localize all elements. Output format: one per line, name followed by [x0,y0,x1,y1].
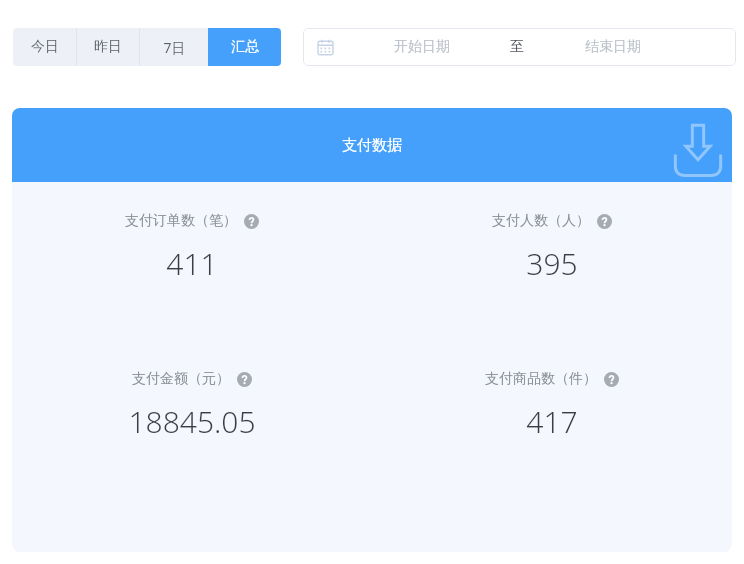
staticText: 结束日期 [585,38,641,56]
staticText: 汇总 [231,38,259,56]
staticText: 开始日期 [394,38,450,56]
staticText: 至 [510,38,524,56]
button[interactable]: 7日 [140,28,208,66]
button[interactable]: 汇总 [208,28,281,66]
button[interactable]: 支付订单数（笔） [12,212,372,284]
button[interactable]: 支付金额（元） [12,370,372,442]
staticText: 18845.05 [128,401,256,442]
staticText: 支付订单数（笔） [125,212,237,230]
staticText: 支付商品数（件） [485,370,597,388]
staticText: 支付数据 [342,136,402,155]
staticText: 支付金额（元） [132,370,230,388]
staticText: 支付人数（人） [492,212,590,230]
staticText: 昨日 [94,38,122,56]
button[interactable]: 开始日期 [303,28,736,66]
button[interactable]: 支付人数（人） [372,212,732,284]
button[interactable]: 昨日 [77,28,139,66]
button[interactable]: Download [664,116,732,182]
button[interactable]: 支付商品数（件） [372,370,732,442]
button[interactable]: 今日 [13,28,76,66]
staticText: 417 [526,401,578,442]
staticText: 7日 [163,38,186,57]
staticText: 411 [166,243,218,284]
staticText: 395 [526,243,578,284]
staticText: 今日 [31,38,59,56]
